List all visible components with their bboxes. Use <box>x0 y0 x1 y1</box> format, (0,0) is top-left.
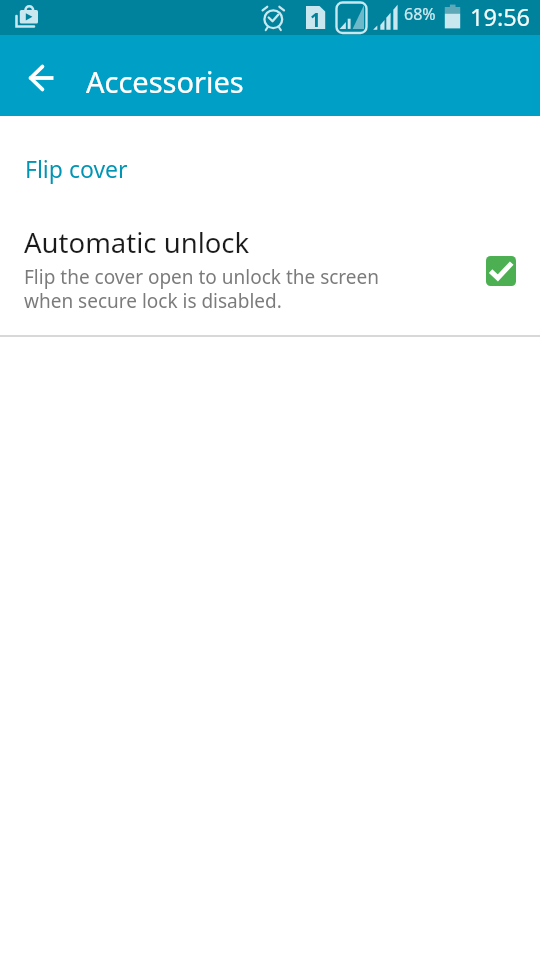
staticText: Accessories <box>86 62 244 101</box>
button[interactable] <box>0 35 70 116</box>
button[interactable] <box>486 256 516 286</box>
button[interactable]: Automatic unlock <box>0 224 540 313</box>
staticText: 19:56 <box>470 1 531 33</box>
staticText: Flip cover <box>25 153 128 184</box>
staticText: Flip the cover open to unlock the screen… <box>24 264 380 313</box>
staticText: Automatic unlock <box>24 224 250 261</box>
staticText: 68% <box>404 3 436 25</box>
staticText: 1 <box>310 7 321 33</box>
